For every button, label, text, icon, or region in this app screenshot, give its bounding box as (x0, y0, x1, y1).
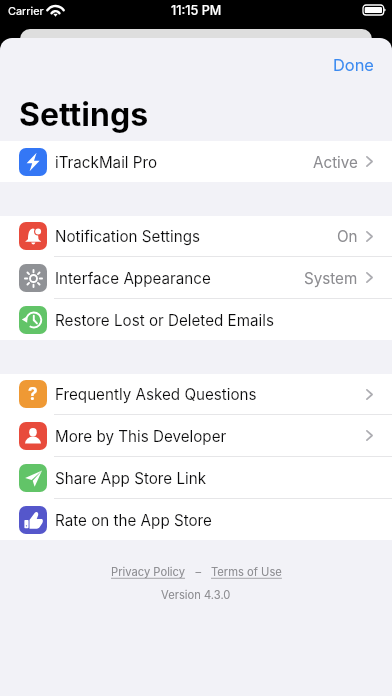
staticText: On (337, 227, 358, 245)
button[interactable]: Notification Settings (0, 216, 392, 257)
staticText: Rate on the App Store (55, 511, 212, 529)
staticText: Version 4.3.0 (161, 588, 231, 602)
button[interactable]: Terms of Use (211, 565, 282, 579)
staticText: Active (313, 153, 358, 171)
button[interactable]: Share App Store Link (0, 457, 392, 499)
button[interactable]: More by This Developer (0, 415, 392, 457)
button[interactable]: Restore Lost or Deleted Emails (0, 299, 392, 340)
staticText: ? (28, 384, 38, 405)
staticText: – (186, 565, 211, 579)
staticText: Restore Lost or Deleted Emails (55, 311, 274, 329)
staticText: Frequently Asked Questions (55, 385, 257, 403)
button[interactable]: ? (0, 374, 392, 415)
staticText: Settings (19, 95, 149, 134)
button[interactable]: Privacy Policy (111, 565, 186, 579)
staticText: System (304, 269, 358, 287)
button[interactable]: Interface Appearance (0, 257, 392, 299)
button[interactable]: Done (313, 47, 392, 83)
button[interactable]: iTrackMail Pro (0, 141, 392, 182)
staticText: More by This Developer (55, 427, 227, 445)
staticText: iTrackMail Pro (55, 153, 158, 171)
staticText: Notification Settings (55, 227, 200, 245)
staticText: Share App Store Link (55, 469, 207, 487)
button[interactable]: Rate on the App Store (0, 499, 392, 540)
staticText: Done (333, 55, 374, 75)
staticText: 11:15 PM (171, 3, 222, 18)
staticText: Interface Appearance (55, 269, 211, 287)
staticText: Carrier (8, 4, 44, 17)
